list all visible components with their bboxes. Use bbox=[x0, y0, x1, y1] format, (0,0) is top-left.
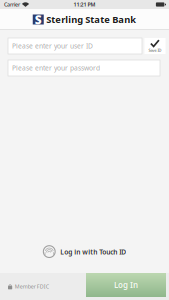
button[interactable]: Log in with Touch ID bbox=[43, 243, 126, 261]
staticText: Save ID bbox=[148, 47, 161, 53]
staticText: Please enter your user ID bbox=[12, 42, 93, 50]
button[interactable]: Log In bbox=[86, 273, 166, 297]
button[interactable]: Save ID bbox=[144, 38, 165, 54]
staticText: Carrier bbox=[4, 1, 20, 8]
staticText: Sterling State Bank bbox=[46, 13, 136, 26]
staticText: Log In bbox=[114, 280, 138, 290]
staticText: Log in with Touch ID bbox=[60, 248, 126, 256]
staticText: 11:21 PM bbox=[73, 1, 95, 8]
staticText: Member FDIC bbox=[15, 283, 49, 290]
staticText: S bbox=[35, 11, 42, 27]
staticText: Please enter your password bbox=[12, 64, 100, 72]
